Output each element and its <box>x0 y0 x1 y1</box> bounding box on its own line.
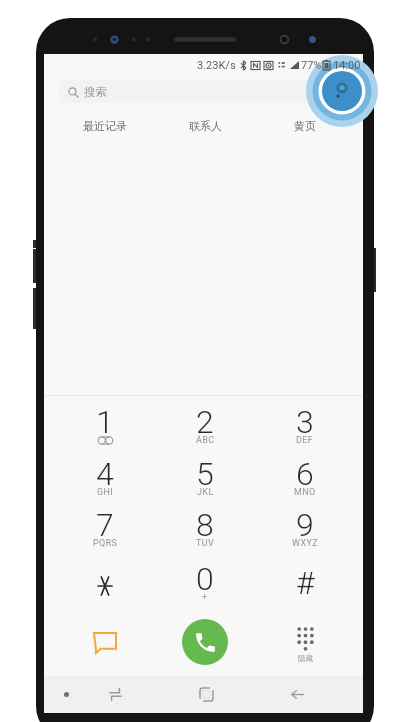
button[interactable]: Send message <box>55 617 155 667</box>
button[interactable]: Recent apps <box>103 676 127 713</box>
staticText: ABC <box>196 435 215 446</box>
staticText: 77% <box>301 59 322 72</box>
staticText: 3.23K/s <box>197 59 236 72</box>
staticText: 4 <box>96 455 114 493</box>
button[interactable]: Menu <box>54 676 78 713</box>
staticText: 9 <box>296 506 314 544</box>
button[interactable]: Hide dialpad <box>255 617 355 667</box>
staticText: 隐藏 <box>298 654 313 663</box>
staticText: 联系人 <box>189 119 222 133</box>
button[interactable]: 6 <box>255 451 355 499</box>
staticText: GHI <box>97 487 114 498</box>
staticText: # <box>296 564 315 602</box>
button[interactable]: Home <box>194 676 218 713</box>
staticText: 2 <box>196 403 214 441</box>
button[interactable] <box>55 556 155 604</box>
button[interactable]: 1 <box>55 399 155 447</box>
staticText: 14:00 <box>333 59 361 72</box>
button[interactable]: 联系人 <box>155 112 255 140</box>
staticText: JKL <box>197 487 214 498</box>
staticText: MNO <box>294 487 316 498</box>
button[interactable]: 7 <box>55 502 155 550</box>
button[interactable]: 黄页 <box>255 112 355 140</box>
staticText: 7 <box>96 506 114 544</box>
staticText: 3 <box>296 403 314 441</box>
staticText: + <box>202 592 208 603</box>
button[interactable]: 0 <box>155 556 255 604</box>
staticText: TUV <box>196 538 215 549</box>
button[interactable]: Call <box>182 619 228 665</box>
button[interactable]: 9 <box>255 502 355 550</box>
staticText: 最近记录 <box>83 119 127 133</box>
staticText: 6 <box>296 455 314 493</box>
button[interactable]: 搜索 <box>59 80 348 103</box>
button[interactable]: 8 <box>155 502 255 550</box>
button[interactable]: 5 <box>155 451 255 499</box>
button[interactable]: # <box>255 556 355 604</box>
button[interactable]: 4 <box>55 451 155 499</box>
button[interactable]: 2 <box>155 399 255 447</box>
button[interactable]: 最近记录 <box>55 112 155 140</box>
staticText: 搜索 <box>84 85 107 99</box>
staticText: 8 <box>196 506 214 544</box>
staticText: 0 <box>196 560 214 598</box>
button[interactable]: Back <box>285 676 309 713</box>
staticText: 黄页 <box>294 119 316 133</box>
staticText: WXYZ <box>292 538 319 549</box>
staticText: 1 <box>96 403 114 441</box>
staticText: 5 <box>196 455 214 493</box>
staticText: DEF <box>296 435 314 446</box>
button[interactable]: 3 <box>255 399 355 447</box>
staticText: PQRS <box>93 538 118 549</box>
